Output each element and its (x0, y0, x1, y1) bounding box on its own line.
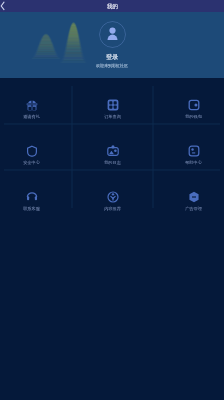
staticText: 联系客服 (23, 206, 40, 211)
button[interactable]: Back (0, 0, 10, 12)
button[interactable]: 我的日志 (80, 124, 144, 170)
staticText: 欢迎来到彩虹社区 (96, 63, 128, 68)
button[interactable]: 安全中心 (0, 124, 63, 170)
staticText: 我的 (107, 3, 118, 10)
staticText: 广告管理 (185, 206, 202, 211)
button[interactable]: 广告管理 (161, 170, 224, 216)
button[interactable]: 内容推荐 (80, 170, 144, 216)
staticText: 我的钱包 (185, 114, 202, 119)
staticText: 我的日志 (104, 160, 121, 165)
button[interactable]: 我的钱包 (161, 78, 224, 124)
button[interactable]: Profile avatar (99, 21, 126, 48)
button[interactable]: 邀请有礼 (0, 78, 63, 124)
staticText: 帮助中心 (185, 160, 202, 165)
staticText: 登录 (106, 53, 119, 61)
button[interactable]: 订单查询 (80, 78, 144, 124)
staticText: 邀请有礼 (23, 114, 40, 119)
staticText: 订单查询 (104, 114, 121, 119)
staticText: 内容推荐 (104, 206, 121, 211)
staticText: 安全中心 (23, 160, 40, 165)
button[interactable]: 帮助中心 (161, 124, 224, 170)
button[interactable]: 联系客服 (0, 170, 63, 216)
